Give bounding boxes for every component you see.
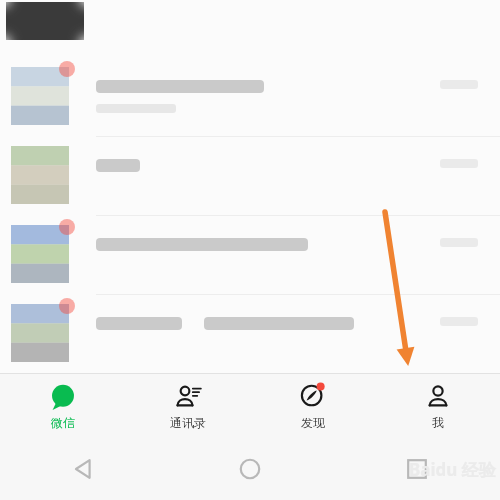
button[interactable] [0, 137, 500, 216]
button[interactable]: 我 [375, 374, 500, 438]
staticText: 发现 [301, 415, 325, 430]
button[interactable]: Recents [333, 438, 500, 500]
staticText: Baidu 经验 [409, 458, 496, 481]
staticText: 微信 [51, 415, 75, 430]
staticText: 通讯录 [170, 415, 206, 430]
staticText: 我 [432, 415, 444, 430]
button[interactable] [0, 216, 500, 295]
button[interactable]: 微信 [0, 374, 125, 438]
button[interactable]: Back [0, 438, 166, 500]
button[interactable]: 发现 [250, 374, 375, 438]
button[interactable] [0, 295, 500, 374]
button[interactable]: Home [166, 438, 333, 500]
button[interactable]: 通讯录 [125, 374, 250, 438]
button[interactable] [0, 58, 500, 137]
